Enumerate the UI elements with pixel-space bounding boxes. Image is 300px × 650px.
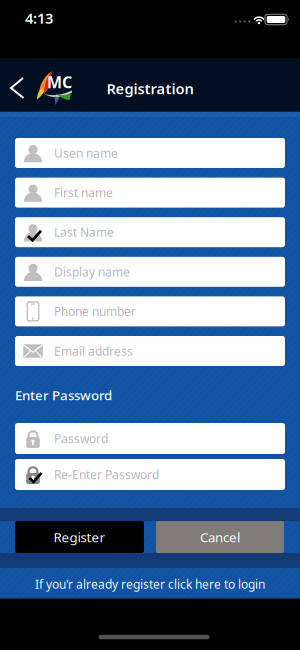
staticText: Email address <box>54 343 133 359</box>
button[interactable]: Last Name <box>15 217 285 247</box>
staticText: Cancel <box>200 528 240 546</box>
staticText: Enter Password <box>15 386 112 404</box>
staticText: If you'r already register click here to … <box>35 576 265 592</box>
button[interactable]: Usen name <box>15 138 285 168</box>
staticText: Password <box>54 430 108 446</box>
staticText: Register <box>53 528 105 546</box>
button[interactable]: Register <box>15 521 144 553</box>
button[interactable]: Email address <box>15 336 285 366</box>
button[interactable]: Re-Enter Password <box>15 459 285 490</box>
staticText: Registration <box>106 79 193 98</box>
button[interactable]: First name <box>15 178 285 208</box>
staticText: Re-Enter Password <box>54 466 159 482</box>
button[interactable]: Display name <box>15 257 285 287</box>
staticText: Usen name <box>54 145 118 161</box>
staticText: MC <box>47 71 72 93</box>
staticText: First name <box>54 185 113 200</box>
button[interactable]: Cancel <box>156 521 284 553</box>
button[interactable]: Phone number <box>15 296 285 326</box>
button[interactable]: Password <box>15 423 285 454</box>
staticText: Phone number <box>54 303 136 319</box>
staticText: Last Name <box>54 224 114 240</box>
button[interactable]: If you'r already register click here to … <box>35 576 265 592</box>
button[interactable] <box>6 77 28 99</box>
staticText: Display name <box>54 264 130 280</box>
staticText: 4:13 <box>25 8 53 28</box>
